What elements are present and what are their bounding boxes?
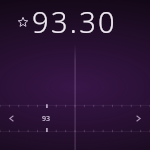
staticText: 93.30 bbox=[32, 2, 117, 41]
staticText: 93 bbox=[42, 114, 51, 124]
button[interactable]: Previous bbox=[4, 111, 19, 126]
button[interactable]: Next bbox=[131, 111, 146, 126]
button[interactable]: Favorite bbox=[18, 17, 28, 27]
